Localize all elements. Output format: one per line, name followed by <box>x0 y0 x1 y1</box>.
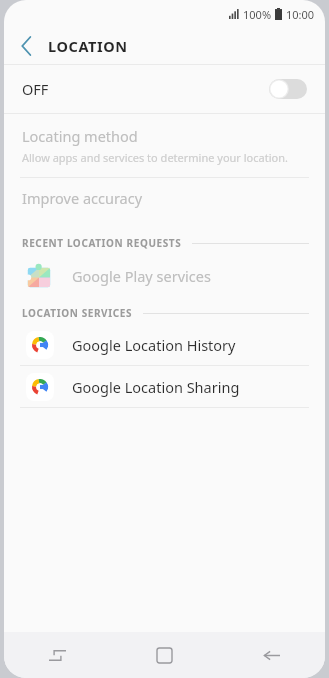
staticText: Google Play services <box>72 266 211 286</box>
button[interactable]: OFF <box>4 65 325 113</box>
staticText: Allow apps and services to determine you… <box>22 150 288 165</box>
staticText: Locating method <box>22 126 138 146</box>
button[interactable]: Improve accuracy <box>4 178 325 218</box>
staticText: Google Location History <box>72 335 236 355</box>
button[interactable]: Home <box>111 632 218 678</box>
staticText: Google Location Sharing <box>72 377 240 397</box>
staticText: LOCATION SERVICES <box>22 306 133 320</box>
button[interactable]: Back <box>218 632 325 678</box>
staticText: OFF <box>22 79 49 99</box>
staticText: RECENT LOCATION REQUESTS <box>22 236 182 250</box>
button[interactable]: Google Play services <box>4 254 325 298</box>
button[interactable]: Recents <box>4 632 111 678</box>
staticText: LOCATION <box>48 36 128 56</box>
button[interactable]: Locating method <box>4 114 325 177</box>
button[interactable]: Google Location Sharing <box>4 366 325 407</box>
staticText: 100% <box>243 7 272 22</box>
staticText: Improve accuracy <box>22 188 143 208</box>
staticText: 10:00 <box>286 7 315 22</box>
button[interactable]: Google Location History <box>4 324 325 365</box>
button[interactable]: Back <box>4 28 48 64</box>
